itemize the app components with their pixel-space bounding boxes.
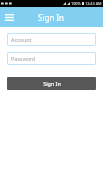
staticText: 12:43 AM [85, 1, 102, 6]
staticText: 100% [71, 1, 81, 6]
button[interactable]: Open navigation menu [2, 10, 17, 25]
staticText: Sign In [38, 12, 65, 23]
button[interactable]: Password [7, 52, 96, 65]
staticText: Sign In [43, 80, 61, 87]
button[interactable]: Account [7, 33, 96, 46]
staticText: Password [11, 55, 36, 62]
staticText: Account [11, 36, 32, 43]
button[interactable]: Sign In [7, 77, 96, 90]
